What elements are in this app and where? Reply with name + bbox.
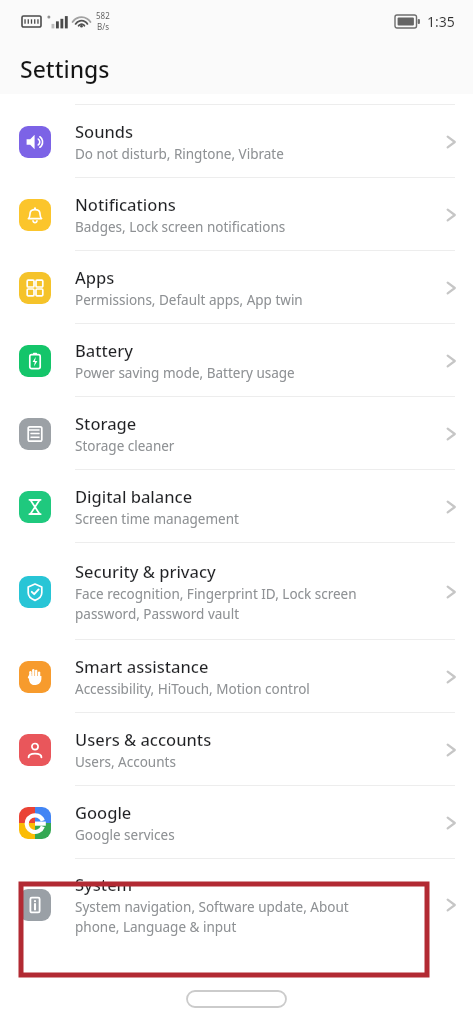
staticText: 582	[96, 10, 110, 21]
staticText: Accessibility, HiTouch, Motion control	[75, 680, 310, 698]
button[interactable]: System	[0, 859, 473, 950]
staticText: Digital balance	[75, 485, 193, 507]
staticText: Users & accounts	[75, 728, 212, 750]
staticText: Do not disturb, Ringtone, Vibrate	[75, 145, 284, 163]
staticText: Sounds	[75, 120, 134, 142]
staticText: Storage cleaner	[75, 437, 175, 455]
button[interactable]: Apps	[0, 251, 473, 324]
button[interactable]: Storage	[0, 397, 473, 470]
staticText: Screen time management	[75, 510, 239, 528]
staticText: Storage	[75, 412, 137, 434]
staticText: Face recognition, Fingerprint ID, Lock s…	[75, 585, 357, 623]
staticText: Users, Accounts	[75, 753, 176, 771]
button[interactable]: Notifications	[0, 178, 473, 251]
staticText: Settings	[20, 53, 110, 84]
staticText: Apps	[75, 266, 115, 288]
button[interactable]: Sounds	[0, 105, 473, 178]
button[interactable]: Digital balance	[0, 470, 473, 543]
staticText: Google services	[75, 826, 175, 844]
button[interactable]: Security & privacy	[0, 543, 473, 640]
button[interactable]: Battery	[0, 324, 473, 397]
staticText: System	[75, 873, 133, 895]
staticText: Google	[75, 801, 132, 823]
button[interactable]: Users & accounts	[0, 713, 473, 786]
button[interactable]: Google	[0, 786, 473, 859]
staticText: Power saving mode, Battery usage	[75, 364, 295, 382]
staticText: System navigation, Software update, Abou…	[75, 898, 349, 936]
button[interactable]: Smart assistance	[0, 640, 473, 713]
staticText: Smart assistance	[75, 655, 209, 677]
staticText: Permissions, Default apps, App twin	[75, 291, 303, 309]
staticText: B/s	[97, 21, 110, 32]
staticText: 1:35	[427, 12, 455, 31]
staticText: Badges, Lock screen notifications	[75, 218, 286, 236]
staticText: Security & privacy	[75, 560, 216, 582]
staticText: Battery	[75, 339, 134, 361]
staticText: Notifications	[75, 193, 176, 215]
